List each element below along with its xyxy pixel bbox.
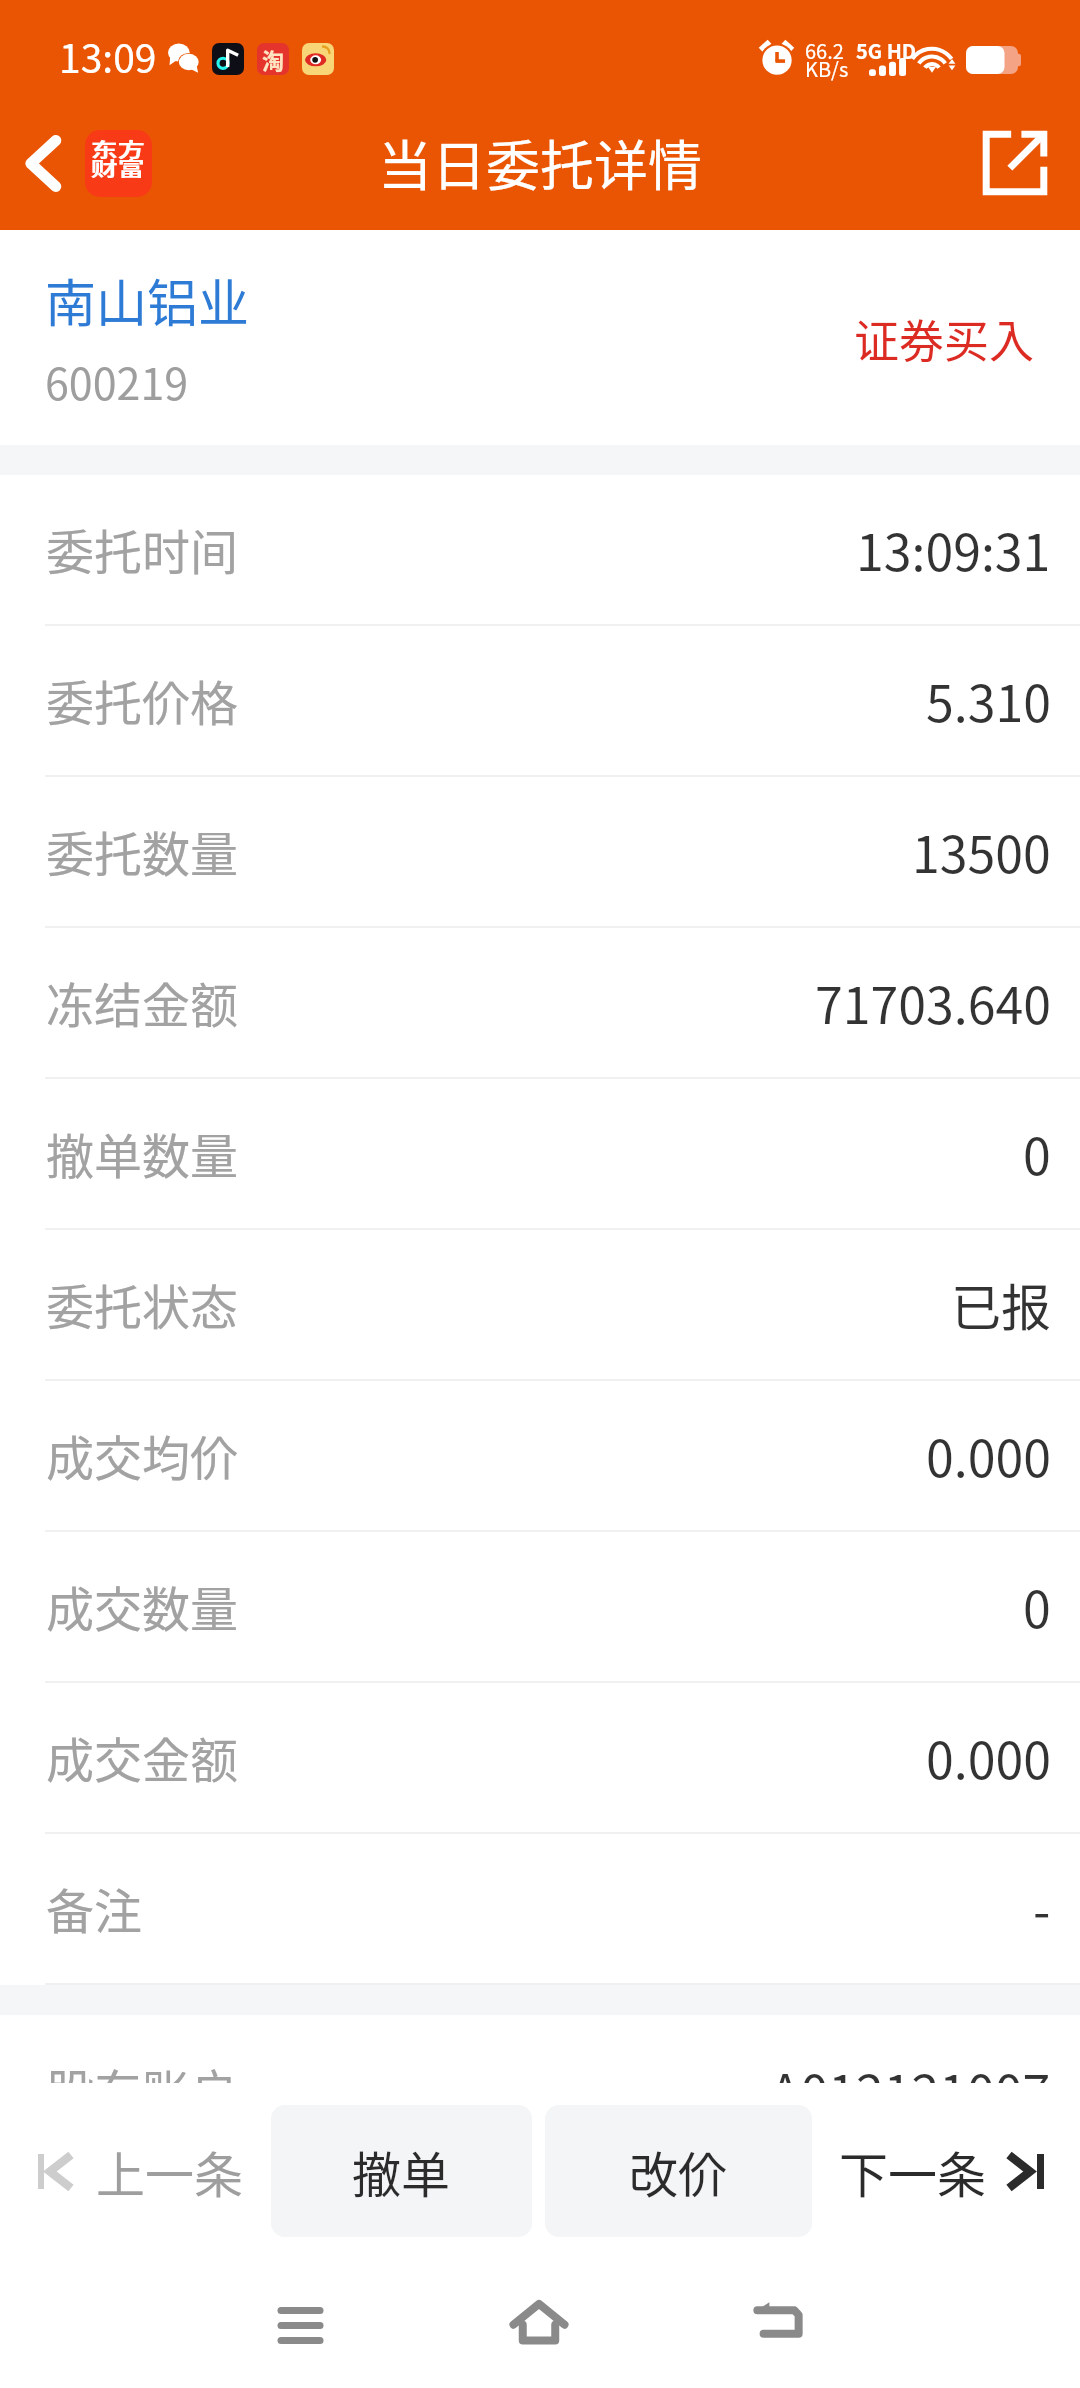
staticText: 5.310	[926, 664, 1051, 736]
button[interactable]: 股东账户	[0, 2015, 1080, 2166]
button[interactable]: 下一条	[807, 2083, 1075, 2259]
button[interactable]: Back	[728, 2272, 828, 2372]
button[interactable]: Back	[3, 123, 83, 203]
staticText: 撤单	[352, 2136, 451, 2207]
button[interactable]: 改价	[545, 2105, 812, 2237]
button[interactable]: 成交数量	[0, 1532, 1080, 1683]
button[interactable]: 成交金额	[0, 1683, 1080, 1834]
staticText: 13:09:31	[856, 513, 1051, 585]
button[interactable]: Share	[967, 115, 1063, 211]
staticText: 5G HD	[856, 36, 917, 65]
staticText: 财富	[91, 154, 146, 182]
staticText: 下一条	[839, 2136, 987, 2207]
staticText: 已报	[951, 1268, 1051, 1340]
staticText: 备注	[46, 1873, 143, 1943]
staticText: KB/s	[805, 54, 849, 83]
button[interactable]: 南山铝业	[0, 230, 1080, 445]
button[interactable]: 备注	[0, 1834, 1080, 1985]
staticText: 委托状态	[46, 1269, 239, 1339]
staticText: 东方	[91, 135, 146, 163]
staticText: 当日委托详情	[378, 123, 702, 201]
staticText: 13500	[912, 815, 1051, 887]
staticText: 13:09	[59, 28, 157, 84]
staticText: 0.000	[926, 1419, 1051, 1491]
staticText: 成交均价	[46, 1420, 239, 1490]
button[interactable]: 委托状态	[0, 1230, 1080, 1381]
staticText: 改价	[629, 2136, 728, 2207]
staticText: 淘	[262, 43, 285, 75]
staticText: 股东账户	[46, 2054, 239, 2124]
staticText: 南山铝业	[45, 263, 250, 337]
staticText: 600219	[45, 350, 189, 412]
staticText: 证券买入	[854, 306, 1035, 371]
button[interactable]: 冻结金额	[0, 928, 1080, 1079]
staticText: 成交金额	[46, 1722, 239, 1792]
staticText: 成交数量	[46, 1571, 239, 1641]
staticText: 0	[1023, 1117, 1051, 1189]
button[interactable]: East Money logo	[85, 130, 152, 197]
button[interactable]: Recent apps	[250, 2275, 350, 2375]
button[interactable]: 委托时间	[0, 475, 1080, 626]
staticText: 委托时间	[46, 514, 239, 584]
staticText: 66.2	[805, 36, 844, 65]
staticText: A012121007	[770, 2053, 1051, 2125]
button[interactable]: 委托数量	[0, 777, 1080, 928]
staticText: 委托数量	[46, 816, 239, 886]
staticText: 委托价格	[46, 665, 239, 735]
button[interactable]: 撤单数量	[0, 1079, 1080, 1230]
staticText: 71703.640	[815, 966, 1051, 1038]
button[interactable]: Home	[489, 2272, 589, 2372]
button[interactable]: 成交均价	[0, 1381, 1080, 1532]
staticText: 0.000	[926, 1721, 1051, 1793]
button[interactable]: 委托价格	[0, 626, 1080, 777]
staticText: 上一条	[96, 2136, 244, 2207]
staticText: -	[1033, 1872, 1051, 1944]
staticText: 冻结金额	[46, 967, 239, 1037]
staticText: 撤单数量	[46, 1118, 239, 1188]
button[interactable]: 撤单	[271, 2105, 532, 2237]
staticText: 0	[1023, 1570, 1051, 1642]
button[interactable]: 上一条	[7, 2083, 275, 2259]
